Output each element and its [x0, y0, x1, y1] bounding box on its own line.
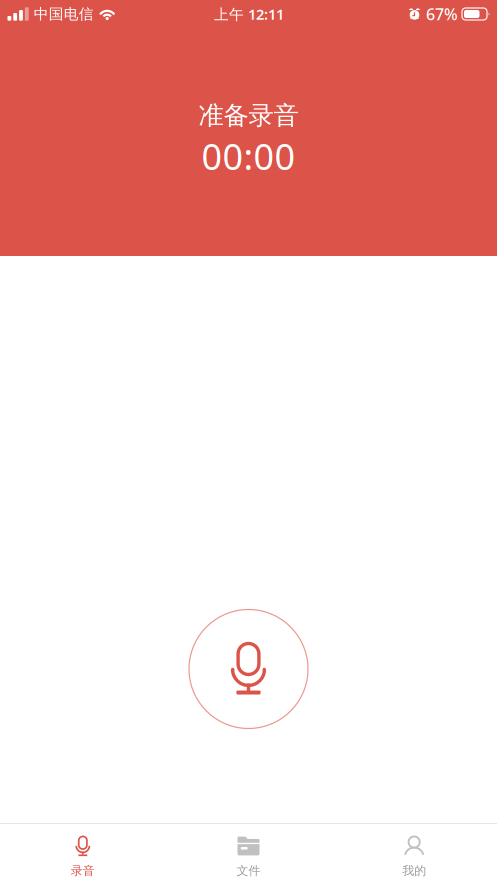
staticText: 录音 — [71, 863, 95, 878]
staticText: 67% — [426, 3, 458, 25]
button[interactable]: 录音 — [0, 824, 166, 883]
staticText: 准备录音 — [198, 100, 298, 131]
staticText: 我的 — [402, 863, 426, 878]
button[interactable]: 文件 — [166, 824, 331, 883]
button[interactable]: 我的 — [331, 824, 497, 883]
staticText: 中国电信 — [34, 5, 94, 23]
staticText: 上午 12:11 — [214, 4, 284, 24]
staticText: 00:00 — [201, 132, 295, 180]
button[interactable]: 开始录音 — [183, 604, 313, 734]
staticText: 文件 — [236, 863, 260, 878]
